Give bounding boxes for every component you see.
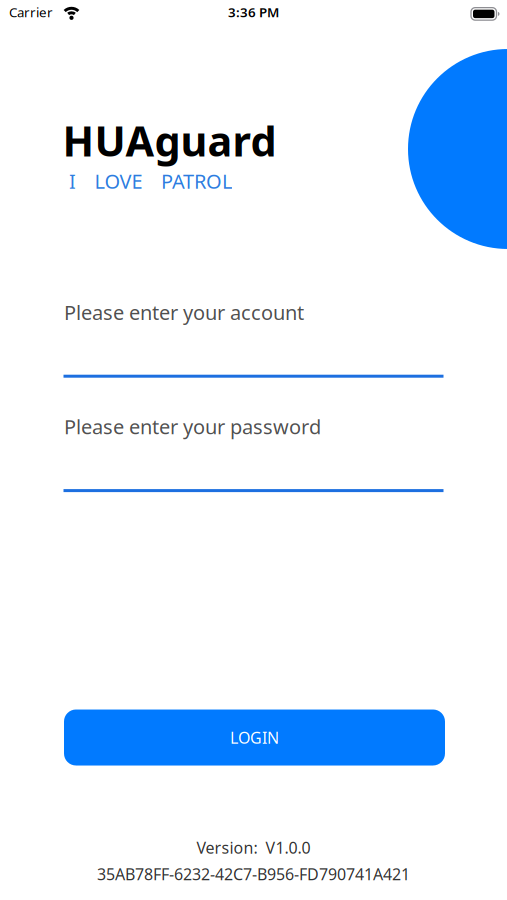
- button[interactable]: LOGIN: [64, 709, 445, 765]
- button[interactable]: Please enter your password: [63, 395, 444, 505]
- staticText: 35AB78FF-6232-42C7-B956-FD790741A421: [97, 863, 410, 885]
- staticText: Please enter your account: [64, 299, 304, 325]
- staticText: Carrier: [9, 3, 53, 21]
- staticText: LOVE: [94, 168, 142, 194]
- staticText: Please enter your password: [64, 413, 321, 440]
- staticText: HUAguard: [62, 113, 276, 168]
- staticText: I: [69, 168, 76, 194]
- staticText: LOGIN: [230, 727, 279, 748]
- staticText: Version: V1.0.0: [196, 837, 310, 858]
- staticText: 3:36 PM: [228, 3, 279, 21]
- staticText: PATROL: [161, 168, 232, 194]
- button[interactable]: Please enter your account: [63, 280, 444, 390]
